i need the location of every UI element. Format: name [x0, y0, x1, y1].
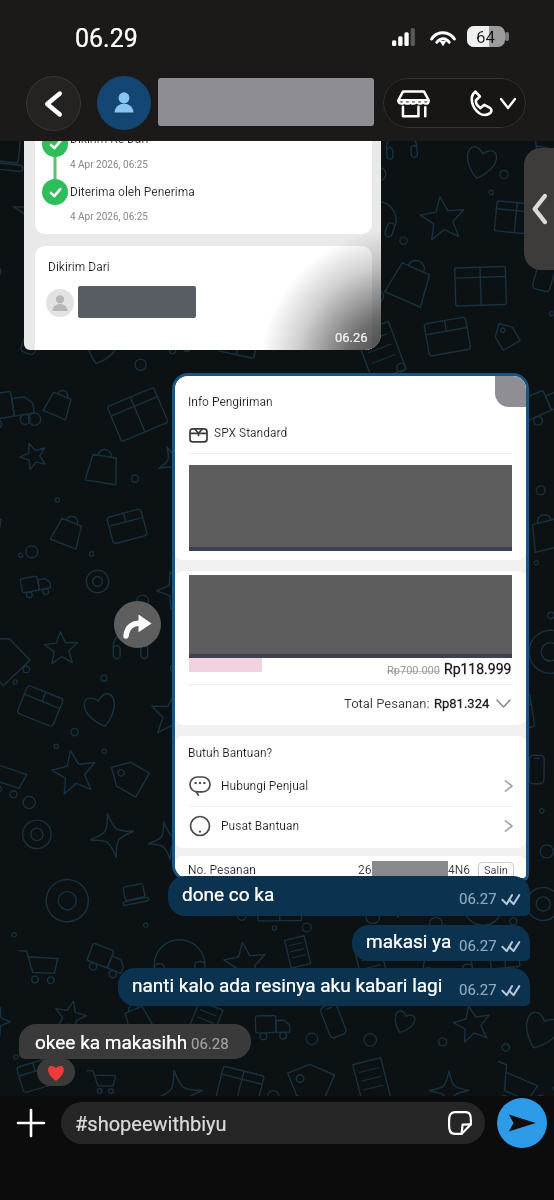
staticText: Butuh Bantuan? [188, 746, 273, 760]
button[interactable]: Send [497, 1098, 547, 1148]
staticText: Pusat Bantuan [221, 819, 300, 833]
staticText: Hubungi Penjual [221, 779, 309, 793]
staticText: Dikirim Dari [48, 260, 110, 274]
staticText: Salin [484, 864, 508, 877]
staticText: done co ka [182, 883, 275, 905]
button[interactable]: Attach [7, 1099, 55, 1147]
staticText: 06.27 [459, 937, 497, 955]
staticText: okee ka makasihh [35, 1031, 188, 1053]
staticText: Rp81.324 [434, 696, 490, 711]
staticText: #shopeewithbiyu [75, 1112, 227, 1135]
staticText: 4 Apr 2026, 06:25 [70, 211, 148, 223]
staticText: Rp118.999 [444, 661, 512, 677]
button[interactable]: Call [441, 78, 526, 128]
staticText: Info Pengiriman [188, 395, 273, 409]
button[interactable]: Shop [385, 78, 441, 128]
button[interactable]: #shopeewithbiyu [61, 1102, 485, 1144]
staticText: 26 [358, 863, 372, 877]
staticText: 06.28 [191, 1035, 229, 1053]
staticText: 64 [476, 27, 496, 47]
staticText: Rp700.000 [387, 664, 440, 677]
staticText: SPX Standard [214, 426, 288, 440]
button[interactable]: Salin [484, 864, 508, 877]
staticText: 4N6 [448, 863, 471, 877]
button[interactable]: Back [26, 76, 81, 131]
staticText: makasi ya [366, 930, 452, 952]
button[interactable]: Info Pengiriman [175, 376, 526, 878]
staticText: No. Pesanan [188, 863, 256, 877]
button[interactable]: Profile [97, 76, 151, 130]
staticText: Dikirim Ke Dari [70, 141, 149, 146]
staticText: 06.26 [335, 330, 368, 345]
button[interactable]: Forward [114, 601, 161, 648]
staticText: 4 Apr 2026, 06:25 [70, 159, 148, 171]
button[interactable]: nanti kalo ada resinya aku kabari lagi [118, 968, 530, 1006]
button[interactable]: Open panel [524, 148, 554, 270]
staticText: Total Pesanan: [344, 696, 430, 711]
button[interactable]: okee ka makasihh [19, 1024, 251, 1059]
button[interactable]: Hubungi Penjual [189, 766, 514, 806]
button[interactable]: Sticker [447, 1110, 473, 1136]
button[interactable]: done co ka [168, 876, 530, 916]
staticText: 06.27 [459, 890, 497, 908]
button[interactable]: Pusat Bantuan [189, 806, 514, 846]
staticText: 06.27 [459, 981, 497, 999]
staticText: nanti kalo ada resinya aku kabari lagi [132, 974, 443, 996]
staticText: 06.29 [75, 24, 138, 53]
button[interactable]: Dikirim Ke Dari [24, 141, 381, 350]
staticText: Diterima oleh Penerima [70, 185, 195, 199]
button[interactable]: makasi ya [352, 925, 530, 961]
button[interactable] [37, 1058, 75, 1086]
